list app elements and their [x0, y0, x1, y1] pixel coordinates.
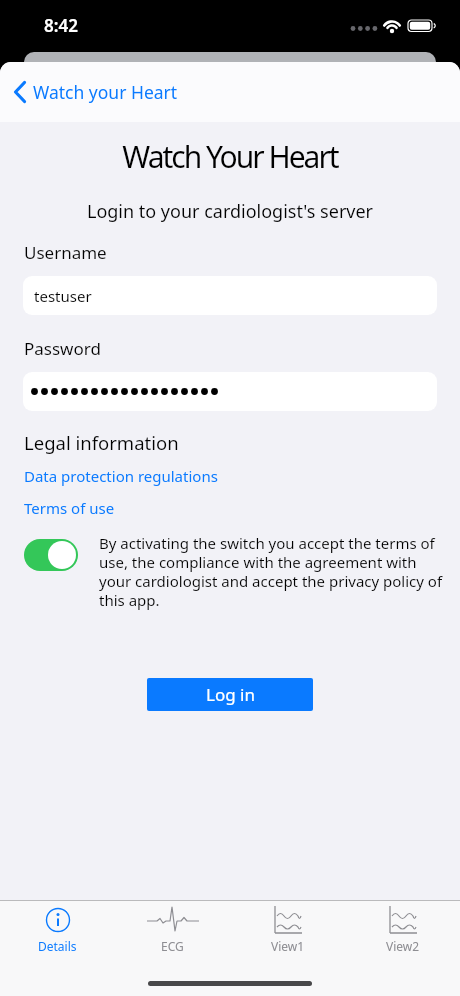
button[interactable]: ECG [115, 906, 230, 954]
button[interactable]: View2 [345, 906, 460, 954]
staticText: Watch your Heart [33, 80, 178, 104]
button[interactable]: Watch your Heart [12, 80, 178, 104]
staticText: View1 [271, 938, 305, 954]
staticText: Watch Your Heart [0, 136, 460, 177]
staticText: ECG [161, 938, 184, 954]
button[interactable] [23, 372, 437, 411]
button[interactable]: Data protection regulations [24, 466, 218, 486]
button[interactable]: View1 [230, 906, 345, 954]
button[interactable]: testuser [23, 276, 437, 315]
staticText: Login to your cardiologist's server [0, 199, 460, 224]
staticText: 8:42 [44, 14, 78, 37]
staticText: testuser [34, 286, 92, 306]
button[interactable]: Details [0, 906, 115, 954]
button[interactable]: Log in [147, 678, 313, 711]
staticText: Legal information [24, 430, 179, 455]
staticText: Log in [206, 683, 255, 706]
staticText: Password [24, 337, 101, 360]
button[interactable] [24, 539, 78, 571]
staticText: By activating the switch you accept the … [99, 533, 444, 610]
staticText: Details [38, 938, 77, 954]
button[interactable]: Terms of use [24, 498, 115, 518]
staticText: View2 [386, 938, 420, 954]
staticText: Username [24, 241, 107, 264]
